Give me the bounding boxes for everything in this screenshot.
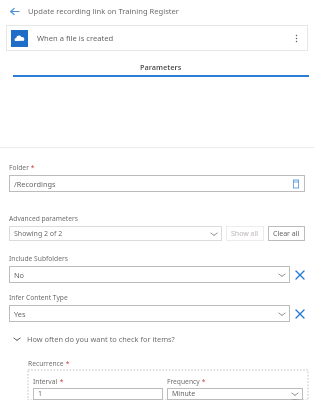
button[interactable]: Remove Include Subfolders xyxy=(290,266,309,283)
staticText: Recurrence xyxy=(28,359,64,368)
button[interactable]: Yes xyxy=(9,305,290,322)
staticText: Clear all xyxy=(273,229,300,239)
button[interactable]: Browse folders xyxy=(290,178,302,190)
button[interactable]: When a file is created xyxy=(6,25,308,51)
staticText: * xyxy=(200,377,206,386)
staticText: Folder xyxy=(9,163,29,172)
button[interactable]: Clear all xyxy=(268,226,305,241)
staticText: Yes xyxy=(14,309,26,319)
button[interactable]: Minute xyxy=(167,388,303,400)
staticText: * xyxy=(58,377,64,386)
staticText: Frequency xyxy=(167,377,200,386)
staticText: When a file is created xyxy=(37,33,114,43)
button[interactable]: Back xyxy=(6,3,22,19)
staticText: Show all xyxy=(231,229,259,239)
button[interactable]: No xyxy=(9,266,290,283)
staticText: Infer Content Type xyxy=(9,293,68,302)
staticText: Advanced parameters xyxy=(9,214,78,223)
staticText: * xyxy=(64,359,70,368)
staticText: * xyxy=(29,163,35,172)
staticText: Interval xyxy=(33,377,58,386)
staticText: Parameters xyxy=(140,62,182,72)
staticText: Include Subfolders xyxy=(9,254,68,263)
staticText: /Recordings xyxy=(14,179,56,189)
staticText: No xyxy=(14,270,25,280)
button[interactable]: Show all xyxy=(226,226,264,241)
button[interactable]: How often do you want to check for items… xyxy=(0,333,314,345)
staticText: Minute xyxy=(172,389,196,399)
button[interactable]: Remove Infer Content Type xyxy=(290,305,309,322)
button[interactable]: 1 xyxy=(33,388,163,400)
button[interactable]: Parameters xyxy=(8,62,314,77)
staticText: Update recording link on Training Regist… xyxy=(28,6,179,16)
button[interactable]: /Recordings xyxy=(9,175,305,192)
staticText: How often do you want to check for items… xyxy=(27,334,175,344)
staticText: 1 xyxy=(38,389,43,399)
staticText: Showing 2 of 2 xyxy=(14,229,63,239)
button[interactable]: Showing 2 of 2 xyxy=(9,226,222,241)
button[interactable]: More options xyxy=(289,31,303,45)
